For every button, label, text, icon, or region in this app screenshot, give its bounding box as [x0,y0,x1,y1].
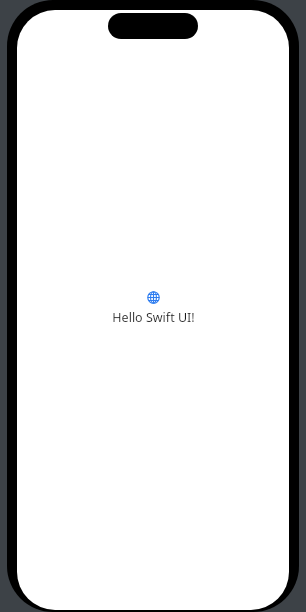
staticText: Hello Swift UI! [112,309,195,326]
button[interactable]: Globe [112,291,195,326]
other: Globe [147,291,160,304]
